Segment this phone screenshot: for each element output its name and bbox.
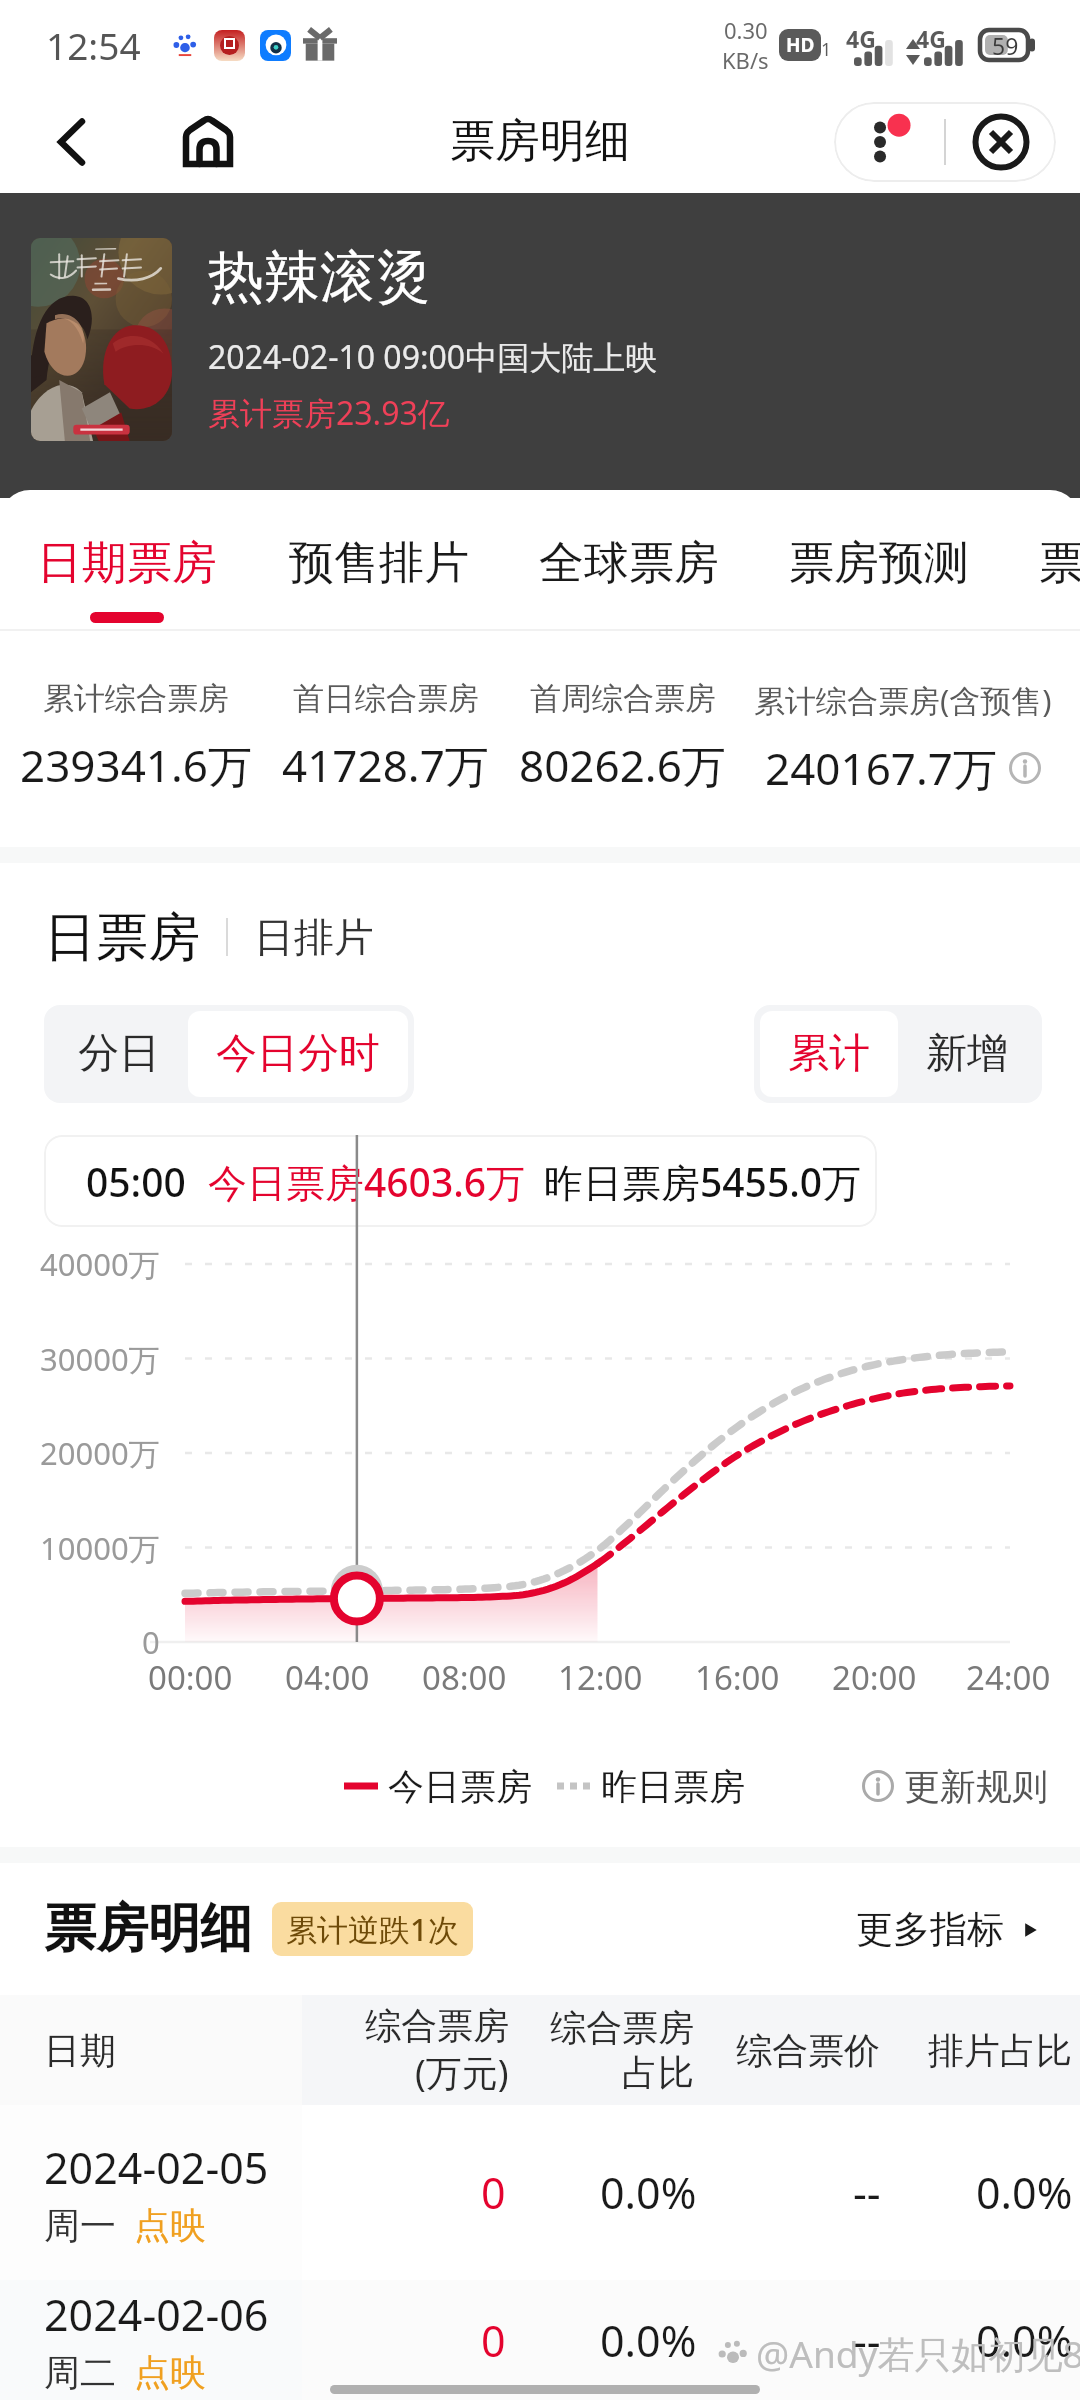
staticText: 0 (481, 2163, 506, 2222)
button[interactable]: More options (834, 102, 944, 182)
staticText: 更多指标 (856, 1906, 1004, 1953)
staticText: 41728.7万 (282, 735, 489, 795)
staticText: 24:00 (966, 1655, 1051, 1700)
staticText: 4G (846, 23, 876, 54)
button[interactable]: 2024-02-06 (0, 2280, 1080, 2400)
button[interactable]: 日期票房 (37, 535, 217, 623)
button[interactable]: 累计 (760, 1011, 898, 1097)
staticText: 0.0% (976, 2311, 1073, 2370)
button[interactable]: 昨日票房 (557, 1751, 745, 1821)
staticText: 周一 (44, 2203, 116, 2248)
staticText: 预售排片 (289, 535, 469, 592)
staticText: -- (853, 2311, 881, 2370)
staticText: 0.0% (600, 2311, 697, 2370)
staticText: 周二 (44, 2350, 116, 2395)
staticText: 80262.6万 (519, 735, 726, 795)
button[interactable]: Home (164, 98, 252, 186)
staticText: 日期票房 (37, 535, 217, 592)
staticText: 4G (916, 23, 946, 54)
staticText: 59 (992, 30, 1019, 61)
staticText: 全球票房 (539, 535, 719, 592)
button[interactable]: 票房预测 (789, 535, 969, 623)
button[interactable]: 更新规则 (862, 1751, 1048, 1821)
staticText: 0.30 (724, 15, 768, 45)
staticText: 首日综合票房 (293, 679, 479, 718)
staticText: 2024-02-05 (44, 2138, 269, 2197)
staticText: 10000万 (40, 1527, 160, 1569)
button[interactable]: Back (28, 98, 116, 186)
staticText: 点映 (134, 2203, 206, 2248)
staticText: 30000万 (40, 1338, 160, 1380)
staticText: 点映 (134, 2350, 206, 2395)
staticText: 0 (481, 2311, 506, 2370)
staticText: 0.0% (600, 2163, 697, 2222)
button[interactable]: 分日 (50, 1011, 188, 1097)
button[interactable]: 2024-02-05 (0, 2105, 1080, 2280)
staticText: 239341.6万 (20, 735, 252, 795)
staticText: 累计逆跌1次 (286, 1908, 459, 1950)
staticText: 累计 (788, 1028, 870, 1080)
staticText: 综合票房 (550, 2005, 694, 2050)
staticText: 占比 (622, 2050, 694, 2095)
staticText: 票房明细 (450, 113, 630, 170)
button[interactable]: 日排片 (254, 912, 374, 962)
staticText: 40000万 (40, 1243, 160, 1285)
staticText: -- (853, 2163, 881, 2222)
button[interactable]: 预售排片 (289, 535, 469, 623)
staticText: 0 (142, 1621, 160, 1663)
staticText: HD (786, 32, 815, 58)
staticText: 昨日票房 (601, 1764, 745, 1809)
staticText: 05:00 (86, 1155, 186, 1208)
staticText: 票房预测 (789, 535, 969, 592)
staticText: @Andy若只如初见8 (756, 2328, 1080, 2379)
staticText: (万元) (415, 2048, 509, 2097)
staticText: 00:00 (148, 1655, 233, 1700)
button[interactable]: Close (946, 102, 1056, 182)
button[interactable]: 今日分时 (188, 1011, 408, 1097)
staticText: 更新规则 (904, 1764, 1048, 1809)
staticText: 今日票房 (388, 1764, 532, 1809)
staticText: 综合票价 (736, 2028, 880, 2073)
button[interactable]: 新增 (898, 1011, 1036, 1097)
staticText: 16:00 (695, 1655, 780, 1700)
staticText: 票房明细 (44, 1896, 252, 1962)
staticText: 累计综合票房 (43, 679, 229, 718)
staticText: 日期 (44, 2028, 116, 2073)
staticText: 1 (821, 37, 832, 62)
staticText: 08:00 (422, 1655, 507, 1700)
staticText: 新增 (926, 1028, 1008, 1080)
staticText: 排片占比 (928, 2028, 1072, 2073)
staticText: 12:00 (558, 1655, 643, 1700)
staticText: KB/s (722, 45, 769, 75)
staticText: 首周综合票房 (530, 679, 716, 718)
button[interactable]: 今日票房 (344, 1751, 532, 1821)
staticText: 日排片 (254, 912, 374, 962)
staticText: 2024-02-10 09:00中国大陆上映 (208, 335, 658, 379)
staticText: 日票房 (44, 905, 200, 969)
staticText: 累计综合票房(含预售) (754, 679, 1052, 721)
staticText: 240167.7万 (765, 738, 997, 798)
staticText: 04:00 (285, 1655, 370, 1700)
staticText: 累计票房23.93亿 (208, 391, 450, 435)
staticText: 分日 (78, 1028, 160, 1080)
button[interactable]: More indicators (856, 1906, 1042, 1953)
staticText: 2024-02-06 (44, 2285, 269, 2344)
staticText: 票 (1039, 535, 1080, 592)
button[interactable]: 票 (1039, 535, 1080, 623)
staticText: 今日分时 (216, 1028, 380, 1080)
staticText: 12:54 (46, 20, 141, 70)
button[interactable]: 全球票房 (539, 535, 719, 623)
staticText: 综合票房 (365, 2003, 509, 2048)
staticText: 今日票房4603.6万 (208, 1155, 526, 1208)
staticText: 昨日票房5455.0万 (544, 1155, 862, 1208)
staticText: 20000万 (40, 1432, 160, 1474)
staticText: 0.0% (976, 2163, 1073, 2222)
staticText: 20:00 (832, 1655, 917, 1700)
button[interactable]: 日票房 (44, 905, 200, 969)
staticText: 热辣滚烫 (208, 242, 432, 313)
